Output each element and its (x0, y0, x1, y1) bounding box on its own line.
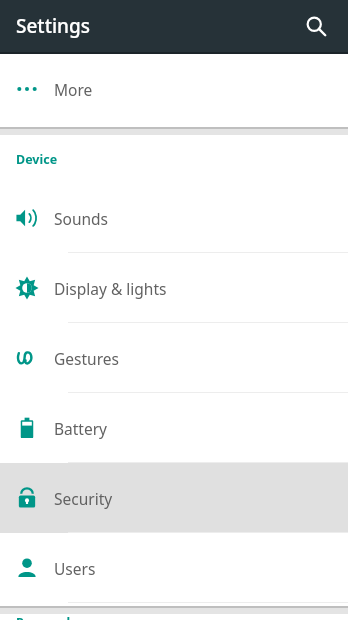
staticText: Gestures (54, 348, 119, 369)
staticText: Sounds (54, 208, 109, 229)
staticText: Battery (54, 418, 108, 439)
button[interactable]: More (0, 54, 348, 124)
button[interactable]: Search (294, 4, 338, 48)
button[interactable]: Sounds (0, 183, 348, 253)
staticText: Security (54, 488, 113, 509)
staticText: Settings (16, 13, 90, 39)
button[interactable]: Security (0, 463, 348, 533)
button[interactable]: Gestures (0, 323, 348, 393)
staticText: Device (16, 151, 58, 168)
staticText: More (54, 79, 93, 100)
button[interactable]: Users (0, 533, 348, 603)
staticText: Personal (16, 614, 71, 620)
staticText: Display & lights (54, 278, 167, 299)
button[interactable]: Battery (0, 393, 348, 463)
staticText: Users (54, 558, 96, 579)
button[interactable]: Display & lights (0, 253, 348, 323)
